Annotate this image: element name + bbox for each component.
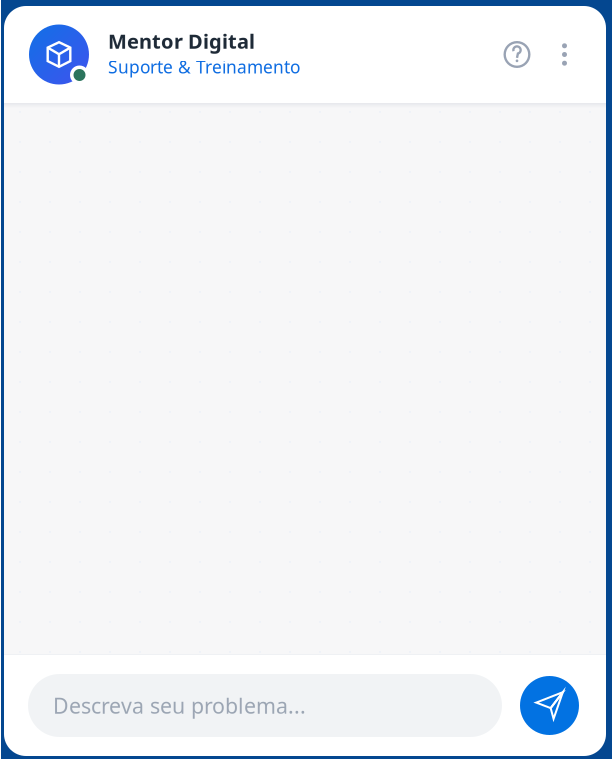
button[interactable]: Descreva seu problema... xyxy=(28,674,502,737)
staticText: Mentor Digital xyxy=(108,28,255,54)
button[interactable]: Ajuda xyxy=(483,30,551,78)
button[interactable]: Mais opções xyxy=(551,30,578,78)
staticText: Descreva seu problema... xyxy=(53,691,306,720)
button[interactable]: Enviar xyxy=(520,676,579,735)
staticText: Suporte & Treinamento xyxy=(108,55,300,78)
